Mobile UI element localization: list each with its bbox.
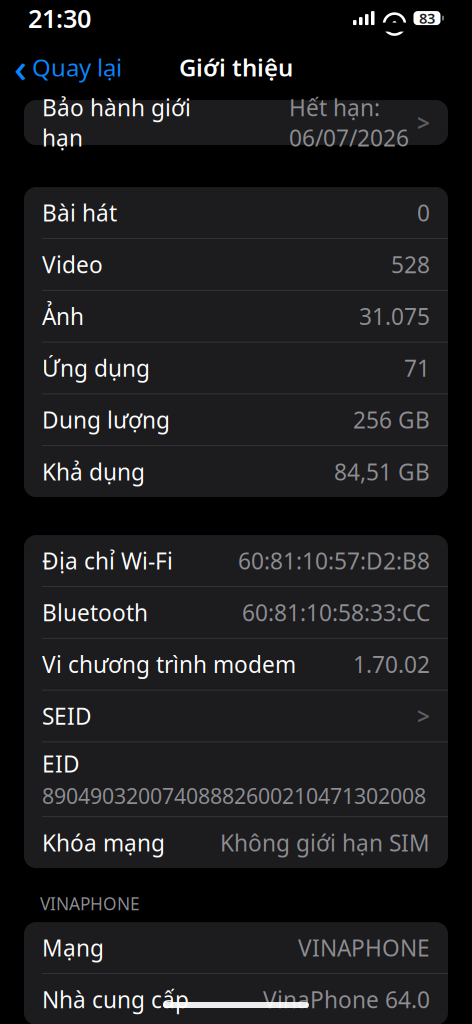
staticText: Địa chỉ Wi-Fi: [42, 545, 173, 576]
staticText: 21:30: [28, 1, 91, 35]
staticText: 60:81:10:57:D2:B8: [238, 545, 430, 576]
staticText: 528: [391, 249, 430, 279]
staticText: Hết hạn: 06/07/2026: [289, 92, 409, 153]
staticText: 1.70.02: [353, 649, 430, 679]
staticText: >: [417, 701, 430, 731]
staticText: Giới thiệu: [179, 51, 293, 83]
staticText: Bảo hành giới hạn: [42, 92, 191, 153]
button[interactable]: Nhà cung cấp: [24, 974, 448, 1024]
staticText: Bài hát: [42, 197, 117, 228]
staticText: ‹: [14, 40, 27, 94]
staticText: 60:81:10:58:33:CC: [242, 597, 430, 627]
staticText: SEID: [42, 701, 92, 731]
staticText: Không giới hạn SIM: [220, 827, 430, 858]
staticText: EID: [42, 749, 80, 779]
staticText: Ứng dụng: [42, 353, 150, 383]
staticText: Khả dụng: [42, 456, 145, 487]
staticText: Video: [42, 249, 103, 279]
staticText: VINAPHONE: [298, 933, 430, 963]
button[interactable]: SEID: [24, 690, 448, 741]
button[interactable]: Khả dụng: [24, 446, 448, 497]
button[interactable]: Mạng: [24, 922, 448, 973]
staticText: Bluetooth: [42, 597, 148, 627]
staticText: VinaPhone 64.0: [263, 984, 430, 1014]
staticText: 256 GB: [353, 405, 430, 435]
staticText: 83: [419, 8, 435, 28]
button[interactable]: Bluetooth: [24, 587, 448, 638]
button[interactable]: Khóa mạng: [24, 817, 448, 868]
staticText: 31.075: [359, 301, 430, 331]
staticText: Nhà cung cấp: [42, 984, 189, 1014]
staticText: Mạng: [42, 933, 104, 963]
staticText: 89049032007408882600210471302008: [42, 782, 426, 810]
button[interactable]: Địa chỉ Wi-Fi: [24, 535, 448, 586]
button[interactable]: EID: [24, 742, 448, 816]
button[interactable]: Ứng dụng: [24, 342, 448, 393]
staticText: VINAPHONE: [40, 892, 140, 915]
button[interactable]: Vi chương trình modem: [24, 639, 448, 690]
button[interactable]: Bài hát: [24, 187, 448, 238]
staticText: Quay lại: [32, 51, 122, 83]
button[interactable]: Dung lượng: [24, 394, 448, 445]
button[interactable]: Video: [24, 239, 448, 290]
button[interactable]: Bảo hành giới hạn: [24, 100, 448, 145]
staticText: 71: [404, 353, 430, 383]
staticText: Ảnh: [42, 301, 84, 331]
staticText: 84,51 GB: [334, 456, 430, 487]
button[interactable]: ‹: [0, 47, 136, 87]
staticText: Vi chương trình modem: [42, 649, 296, 679]
staticText: >: [417, 107, 430, 138]
staticText: Dung lượng: [42, 405, 170, 435]
button[interactable]: Ảnh: [24, 291, 448, 342]
staticText: 0: [417, 197, 430, 228]
staticText: Khóa mạng: [42, 827, 165, 858]
